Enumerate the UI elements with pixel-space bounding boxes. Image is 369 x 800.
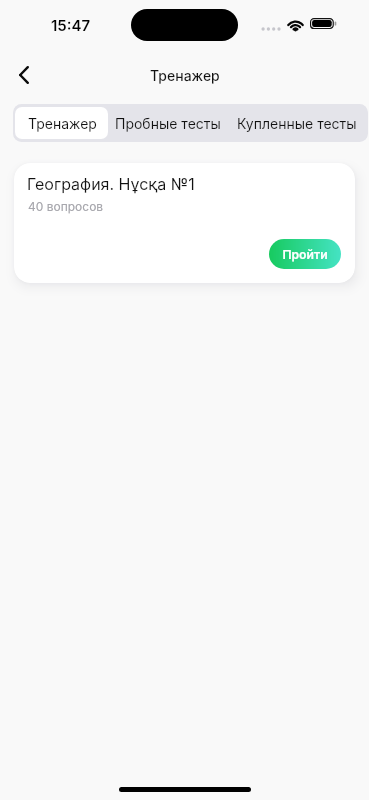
button[interactable]: Тренажер — [15, 107, 108, 139]
staticText: Пройти — [282, 247, 328, 262]
staticText: Тренажер — [150, 67, 220, 84]
staticText: Пробные тесты — [115, 115, 221, 132]
button[interactable]: Пройти — [269, 239, 341, 269]
staticText: Купленные тесты — [237, 115, 357, 132]
staticText: 40 вопросов — [28, 199, 104, 214]
staticText: 15:47 — [51, 16, 91, 34]
staticText: Тренажер — [28, 115, 97, 132]
button[interactable]: Купленные тесты — [226, 107, 365, 139]
button[interactable]: География. Нұсқа №1 — [14, 163, 355, 283]
button[interactable]: Пробные тесты — [108, 107, 226, 139]
staticText: География. Нұсқа №1 — [27, 174, 195, 193]
button[interactable]: Back — [4, 55, 44, 95]
